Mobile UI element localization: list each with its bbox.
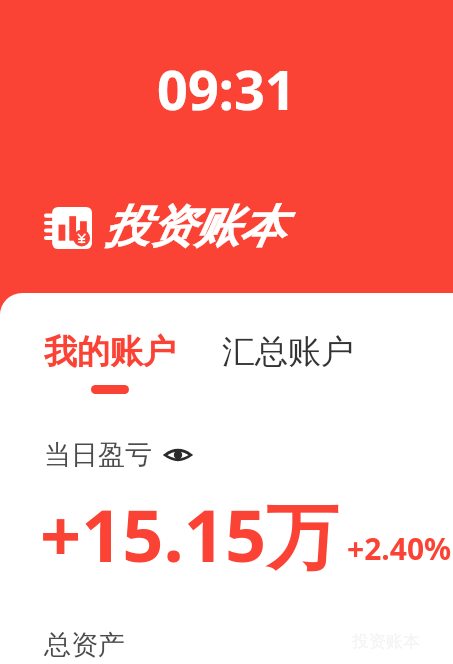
button[interactable]: 我的账户 xyxy=(44,331,176,394)
staticText: +15.15万 xyxy=(40,485,339,583)
staticText: 总资产 xyxy=(44,628,125,662)
staticText: 汇总账户 xyxy=(222,331,354,373)
button[interactable]: 汇总账户 xyxy=(222,331,354,373)
button[interactable]: 投资账本 xyxy=(44,199,284,256)
staticText: 投资账本 xyxy=(104,199,284,256)
staticText: 投资账本 xyxy=(352,631,420,652)
staticText: +2.40% xyxy=(347,528,452,569)
staticText: 当日盈亏 xyxy=(44,438,152,472)
staticText: 我的账户 xyxy=(44,331,176,373)
staticText: 09:31 xyxy=(157,52,296,126)
button[interactable]: Toggle balance visibility xyxy=(44,438,192,472)
